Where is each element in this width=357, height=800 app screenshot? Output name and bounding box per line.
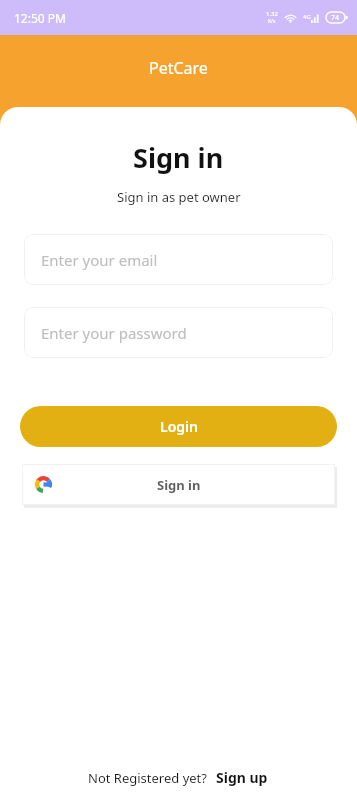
staticText: Enter your password [41,323,187,343]
staticText: Not Registered yet? [88,769,207,787]
staticText: 74 [331,13,340,23]
staticText: Sign in [133,139,224,176]
staticText: 4G [303,13,311,21]
staticText: PetCare [149,57,208,79]
button[interactable]: Sign up [215,766,269,789]
staticText: 1.32 [266,10,278,18]
button[interactable]: Login [20,406,337,447]
staticText: Sign in as pet owner [117,188,241,206]
button[interactable]: Enter your password [24,307,333,358]
other: Google [35,476,52,493]
staticText: Enter your email [41,250,158,270]
staticText: Sign in [157,476,201,494]
button[interactable]: Enter your email [24,234,333,285]
staticText: 12:50 PM [14,10,66,26]
staticText: K/s [268,18,276,25]
staticText: Sign up [216,768,268,787]
button[interactable]: Google [22,464,335,505]
staticText: Login [160,417,198,436]
